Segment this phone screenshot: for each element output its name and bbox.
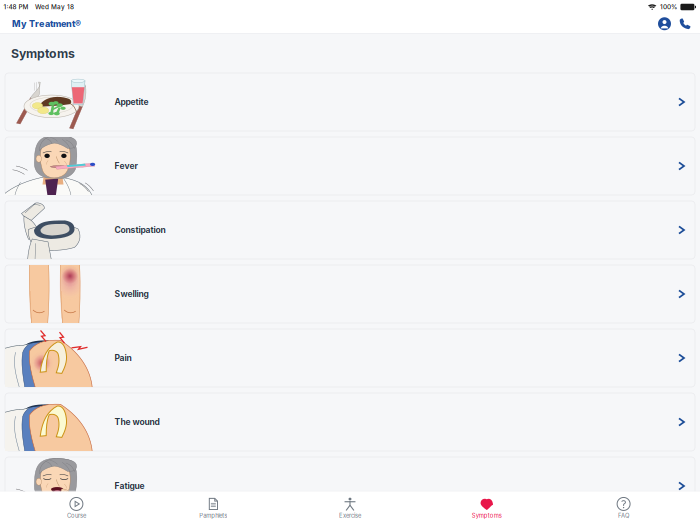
staticText: 1:48 PM (3, 3, 28, 11)
staticText: Constipation (114, 225, 165, 235)
staticText: Exercise (339, 512, 361, 519)
staticText: Swelling (114, 289, 148, 299)
button[interactable]: Pain (5, 329, 695, 387)
button[interactable]: Call (675, 14, 695, 34)
staticText: Course (67, 512, 86, 519)
staticText: Appetite (114, 97, 148, 107)
staticText: Wed May 18 (35, 3, 74, 11)
staticText: Pamphlets (199, 512, 227, 519)
staticText: My Treatment® (12, 18, 81, 29)
staticText: Pain (114, 353, 131, 363)
staticText: Symptoms (11, 46, 75, 61)
button[interactable]: Fever (5, 137, 695, 195)
staticText: Fatigue (114, 481, 144, 491)
button[interactable]: Fatigue (5, 457, 695, 515)
button[interactable]: Exercise (282, 491, 418, 525)
button[interactable]: FAQ (555, 491, 692, 525)
staticText: FAQ (618, 512, 629, 519)
button[interactable]: Appetite (5, 73, 695, 131)
button[interactable]: The wound (5, 393, 695, 451)
staticText: Symptoms (472, 512, 502, 519)
button[interactable]: Swelling (5, 265, 695, 323)
staticText: Fever (114, 161, 137, 171)
button[interactable]: Symptoms (418, 491, 555, 525)
staticText: 100% (660, 3, 677, 11)
button[interactable]: Pamphlets (145, 491, 282, 525)
button[interactable]: Course (8, 491, 145, 525)
staticText: The wound (114, 417, 159, 427)
button[interactable]: Account (654, 13, 675, 34)
button[interactable]: Constipation (5, 201, 695, 259)
